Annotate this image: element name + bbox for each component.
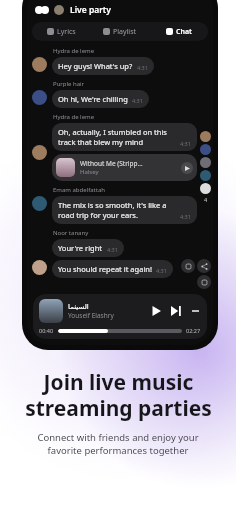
staticText: Purple hair [53, 80, 85, 88]
staticText: Live party [70, 4, 111, 16]
button[interactable]: More options [189, 305, 201, 317]
button[interactable]: Participant [200, 183, 211, 194]
staticText: Lyrics [57, 27, 76, 37]
staticText: Chat [176, 27, 192, 37]
button[interactable]: Participant [200, 157, 211, 168]
staticText: Your're right [58, 243, 103, 253]
staticText: السينما [68, 303, 89, 311]
button[interactable]: Oh, actually, I stumbled on this track t… [52, 123, 197, 151]
staticText: Youseif Elashry [68, 311, 114, 320]
button[interactable]: You should repeat it again! [52, 260, 173, 278]
staticText: 02:27 [186, 327, 201, 334]
staticText: Noor tanany [53, 229, 89, 237]
button[interactable]: Lyrics [32, 22, 90, 41]
staticText: 4:31 [180, 140, 191, 147]
staticText: You should repeat it again! [58, 264, 152, 274]
staticText: 4:31 [156, 267, 167, 274]
button[interactable]: Your're right [52, 239, 124, 257]
button[interactable]: Without Me (Stripp… [52, 154, 197, 181]
staticText: 4:31 [180, 213, 191, 220]
staticText: 4:31 [132, 97, 143, 104]
button[interactable]: Chat [149, 22, 208, 41]
button[interactable]: Oh hi, We're chilling [52, 90, 149, 108]
staticText: Connect with friends and enjoy your favo… [37, 431, 199, 457]
staticText: Playlist [113, 27, 137, 37]
button[interactable]: Participant [200, 144, 211, 155]
button[interactable]: Participant [200, 170, 211, 181]
button[interactable]: Attach [197, 275, 211, 289]
staticText: Oh hi, We're chilling [58, 94, 128, 104]
staticText: Without Me (Stripp… [80, 159, 143, 168]
button[interactable]: Hey guys! What's up? [52, 57, 154, 75]
button[interactable]: Next track [169, 304, 183, 318]
staticText: Oh, actually, I stumbled on this track t… [58, 127, 167, 147]
staticText: 4:31 [137, 64, 148, 71]
button[interactable]: The mix is so smooth, it's like a road t… [52, 196, 197, 224]
button[interactable]: Play track [181, 162, 193, 174]
button[interactable]: Copy link [181, 259, 195, 273]
button[interactable]: Share [197, 259, 211, 273]
staticText: 4:31 [107, 246, 118, 253]
staticText: Join live music streaming parties [25, 368, 212, 423]
staticText: Hydra de leme [53, 113, 95, 121]
staticText: Halsey [80, 168, 99, 176]
button[interactable]: Playlist [90, 22, 149, 41]
button[interactable]: Play [149, 304, 163, 318]
staticText: 4 [204, 196, 208, 203]
staticText: 00:40 [39, 327, 54, 334]
staticText: Emam abdelfattah [53, 186, 105, 194]
button[interactable] [58, 329, 182, 333]
button[interactable]: Participant [200, 131, 211, 142]
staticText: The mix is so smooth, it's like a road t… [58, 200, 167, 220]
staticText: Hey guys! What's up? [58, 61, 133, 71]
staticText: Hydra de leme [53, 47, 95, 55]
